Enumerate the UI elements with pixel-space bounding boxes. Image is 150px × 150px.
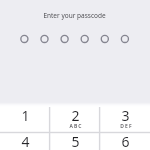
staticText: 4 xyxy=(21,132,30,150)
staticText: ABC xyxy=(69,123,83,130)
staticText: 3 xyxy=(121,106,130,125)
button[interactable]: 4 xyxy=(0,132,50,150)
staticText: 2 xyxy=(71,106,80,125)
other: Passcode entry field, 6 digits xyxy=(0,32,150,44)
button[interactable]: 1 xyxy=(0,106,50,132)
staticText: 1 xyxy=(21,106,30,125)
button[interactable]: 6 xyxy=(100,132,150,150)
button[interactable]: 2 xyxy=(50,106,100,132)
staticText: 6 xyxy=(121,132,130,150)
staticText: 5 xyxy=(71,132,80,150)
button[interactable]: 5 xyxy=(50,132,100,150)
staticText: DEF xyxy=(120,123,133,130)
button[interactable]: 3 xyxy=(100,106,150,132)
staticText: Enter your passcode xyxy=(43,11,106,20)
